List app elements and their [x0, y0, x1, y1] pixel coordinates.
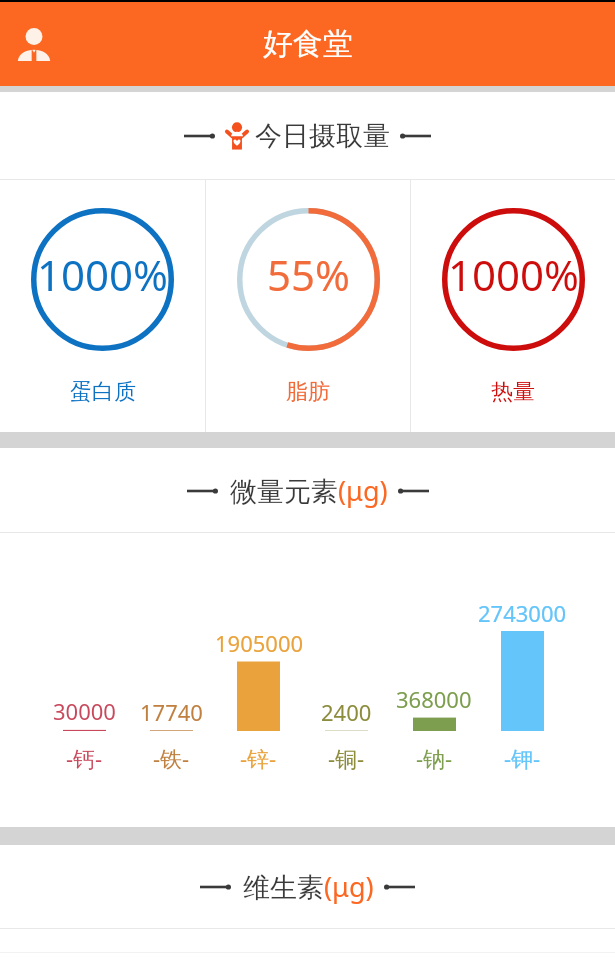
staticText: 30000 — [53, 696, 116, 726]
staticText: 热量 — [491, 378, 535, 406]
staticText: 今日摄取量 — [255, 119, 390, 153]
staticText: 1000% — [37, 246, 168, 303]
staticText: -钠- — [416, 743, 453, 773]
staticText: 2400 — [321, 697, 372, 727]
staticText: 2743000 — [478, 598, 566, 628]
staticText: 蛋白质 — [70, 378, 136, 406]
staticText: -铁- — [153, 743, 190, 773]
staticText: 368000 — [396, 684, 472, 714]
staticText: 17740 — [140, 697, 203, 727]
staticText: -铜- — [328, 743, 365, 773]
staticText: 维生素(μg) — [243, 868, 374, 905]
staticText: 55% — [267, 246, 350, 303]
staticText: 1905000 — [215, 628, 302, 658]
staticText: -钾- — [504, 743, 541, 773]
staticText: 1000% — [448, 246, 579, 303]
staticText: -钙- — [66, 743, 103, 773]
staticText: -锌- — [240, 743, 277, 773]
staticText: 好食堂 — [263, 25, 353, 63]
staticText: 脂肪 — [286, 378, 330, 406]
button[interactable]: Profile — [8, 18, 60, 70]
staticText: 微量元素(μg) — [230, 472, 388, 509]
